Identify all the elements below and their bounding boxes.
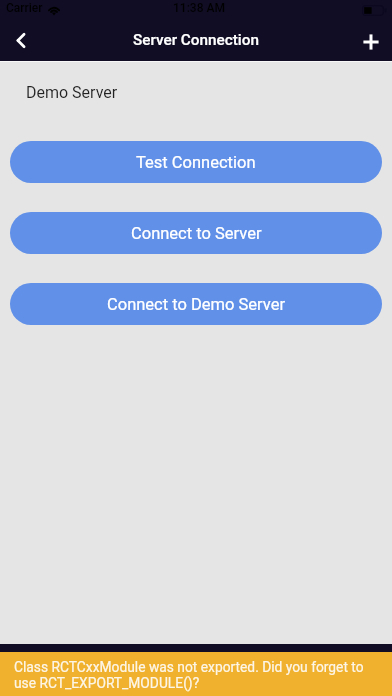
staticText: Server Connection (133, 31, 259, 49)
button[interactable]: Add (352, 22, 392, 60)
staticText: Test Connection (136, 153, 256, 172)
staticText: Connect to Demo Server (107, 295, 286, 314)
staticText: 11:38 AM (173, 1, 225, 15)
staticText: Demo Server (26, 83, 118, 102)
button[interactable]: Connect to Server (10, 212, 382, 254)
button[interactable]: Test Connection (10, 141, 382, 183)
staticText: Connect to Server (131, 224, 262, 243)
staticText: Carrier (6, 1, 43, 15)
button[interactable]: Connect to Demo Server (10, 283, 382, 325)
staticText: Class RCTCxxModule was not exported. Did… (14, 659, 374, 691)
button[interactable]: Back (0, 22, 40, 60)
